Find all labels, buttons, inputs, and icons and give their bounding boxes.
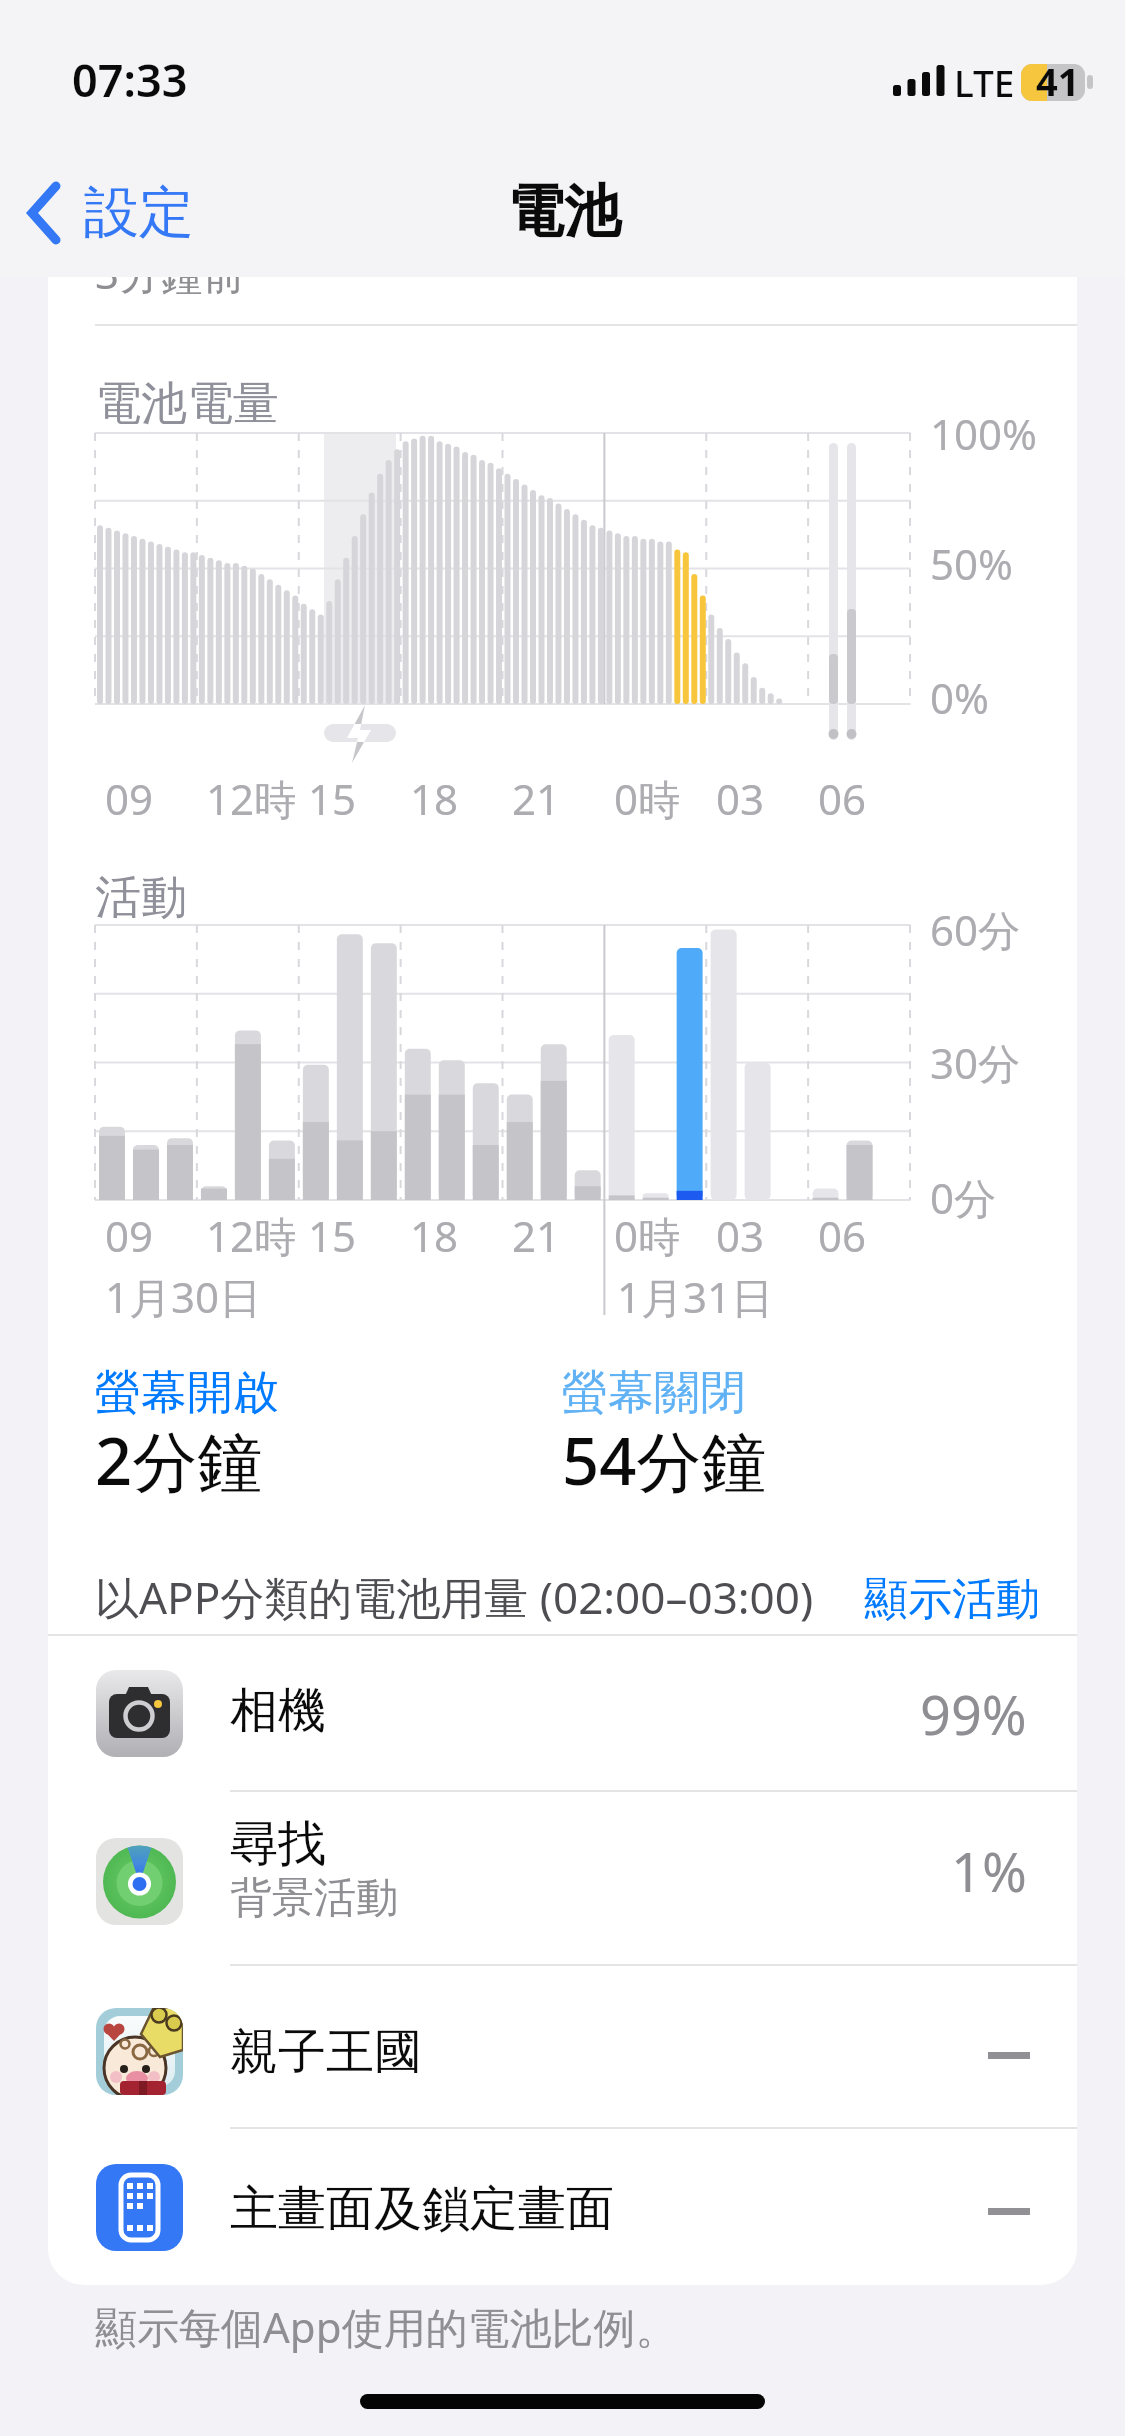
- staticText: 2分鐘: [95, 1416, 263, 1505]
- button[interactable]: [48, 2127, 1077, 2285]
- staticText: 1%: [951, 1834, 1027, 1908]
- staticText: 21: [512, 1207, 561, 1264]
- staticText: 09: [105, 770, 154, 827]
- staticText: 1月31日: [617, 1268, 774, 1325]
- staticText: 螢幕關閉: [562, 1364, 746, 1422]
- staticText: 15: [308, 770, 357, 827]
- staticText: 60分: [930, 901, 1021, 958]
- staticText: 54分鐘: [562, 1416, 767, 1505]
- staticText: 相機: [230, 1681, 326, 1741]
- staticText: 41: [1036, 55, 1080, 107]
- staticText: LTE: [954, 57, 1015, 107]
- staticText: 尋找: [230, 1814, 326, 1874]
- staticText: 電池電量: [95, 375, 279, 433]
- staticText: 21: [512, 770, 561, 827]
- staticText: 18: [410, 1207, 459, 1264]
- staticText: 0分: [930, 1169, 997, 1226]
- staticText: 03: [716, 770, 765, 827]
- staticText: 螢幕開啟: [95, 1364, 279, 1422]
- staticText: 07:33: [72, 49, 188, 110]
- button[interactable]: [48, 1636, 1077, 1788]
- staticText: 背景活動: [230, 1872, 398, 1925]
- staticText: 18: [410, 770, 459, 827]
- staticText: 12時: [206, 1207, 297, 1264]
- staticText: 活動: [95, 869, 187, 927]
- staticText: 100%: [930, 405, 1037, 462]
- button[interactable]: [48, 1964, 1077, 2124]
- staticText: 09: [105, 1207, 154, 1264]
- staticText: 顯示活動: [864, 1572, 1040, 1627]
- staticText: 15: [308, 1207, 357, 1264]
- staticText: 0%: [930, 669, 989, 726]
- staticText: 50%: [930, 535, 1013, 592]
- staticText: 顯示每個App使用的電池比例。: [95, 2298, 678, 2355]
- staticText: 06: [818, 1207, 867, 1264]
- staticText: 30分: [930, 1034, 1021, 1091]
- staticText: 0時: [614, 770, 681, 827]
- staticText: 3分鐘前: [95, 244, 246, 301]
- button[interactable]: 顯示活動: [780, 1560, 1040, 1630]
- staticText: 主畫面及鎖定畫面: [230, 2179, 614, 2239]
- staticText: 1月30日: [105, 1268, 262, 1325]
- staticText: 設定: [84, 178, 194, 247]
- staticText: 99%: [920, 1677, 1027, 1751]
- staticText: 電池: [507, 176, 621, 248]
- button[interactable]: 設定: [20, 176, 220, 256]
- staticText: 親子王國: [230, 2022, 422, 2082]
- staticText: 12時: [206, 770, 297, 827]
- button[interactable]: [48, 1790, 1077, 1962]
- staticText: 0時: [614, 1207, 681, 1264]
- staticText: 06: [818, 770, 867, 827]
- staticText: 以APP分類的電池用量 (02:00–03:00): [95, 1567, 814, 1627]
- staticText: 03: [716, 1207, 765, 1264]
